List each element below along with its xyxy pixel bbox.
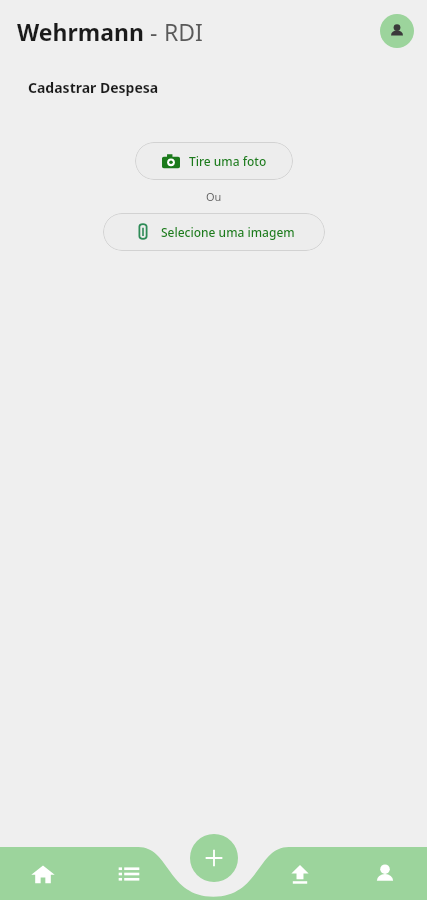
staticText: Cadastrar Despesa (28, 78, 159, 97)
button[interactable]: Adicionar (190, 834, 238, 882)
button[interactable]: Tire uma foto (135, 142, 293, 180)
button[interactable]: Conta (342, 847, 427, 900)
button[interactable]: Lista (86, 847, 172, 900)
staticText: RDI (164, 16, 203, 47)
button[interactable]: Perfil (380, 14, 414, 48)
staticText: Wehrmann (17, 16, 144, 47)
staticText: Selecione uma imagem (161, 224, 295, 240)
staticText: - (144, 16, 164, 47)
button[interactable]: Selecione uma imagem (103, 213, 325, 251)
button[interactable]: Início (0, 847, 86, 900)
button[interactable]: Enviar (257, 847, 342, 900)
staticText: Ou (206, 189, 222, 204)
staticText: Tire uma foto (189, 153, 267, 169)
